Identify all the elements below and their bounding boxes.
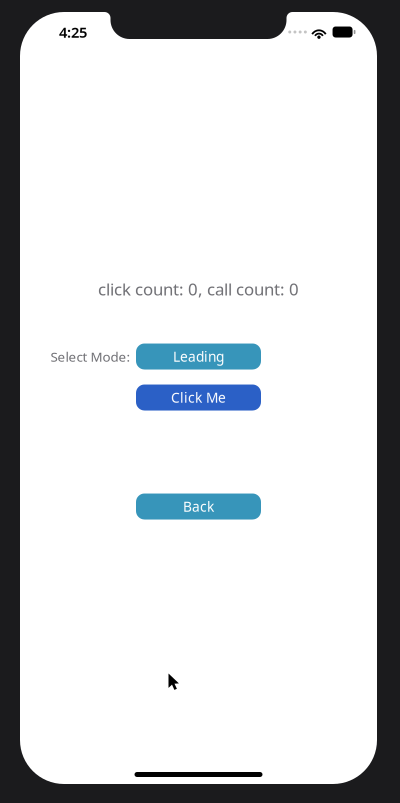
staticText: Select Mode: [50, 347, 130, 366]
staticText: Back [183, 497, 214, 516]
staticText: 4:25 [59, 22, 87, 42]
button[interactable]: Click Me [136, 384, 261, 410]
button[interactable]: Back [136, 493, 261, 519]
staticText: Leading [173, 347, 224, 366]
staticText: click count: 0, call count: 0 [98, 278, 299, 300]
button[interactable]: Leading [136, 343, 261, 369]
staticText: Click Me [171, 388, 226, 407]
